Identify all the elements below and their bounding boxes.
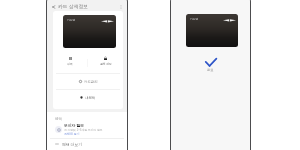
button[interactable]: 혜택 더보기	[47, 139, 127, 149]
button[interactable]: 무이자 할부	[47, 123, 127, 136]
staticText: 자세히 보기	[64, 132, 80, 136]
staticText: 카드명	[67, 18, 76, 22]
button[interactable]: 결제 예정	[88, 57, 123, 66]
staticText: 전 가맹점 2~3개월 무이자 할부	[64, 128, 103, 132]
staticText: 내역	[67, 62, 73, 66]
staticText: 혜택 더보기	[62, 142, 82, 147]
staticText: 혜택	[55, 117, 62, 121]
staticText: 카드 상세정보	[58, 3, 89, 10]
staticText: 완료	[207, 68, 214, 72]
staticText: 내혜택	[85, 96, 96, 100]
button[interactable]: More options	[118, 4, 124, 10]
staticText: 카드관리	[84, 80, 98, 84]
button[interactable]: 내혜택	[53, 90, 123, 105]
staticText: 카드명	[190, 17, 199, 21]
staticText: 결제 예정	[100, 62, 112, 66]
button[interactable]: 내역	[53, 57, 87, 66]
button[interactable]: 카드관리	[53, 74, 123, 89]
button[interactable]: Back	[50, 4, 56, 10]
staticText: 무이자 할부	[64, 123, 84, 128]
